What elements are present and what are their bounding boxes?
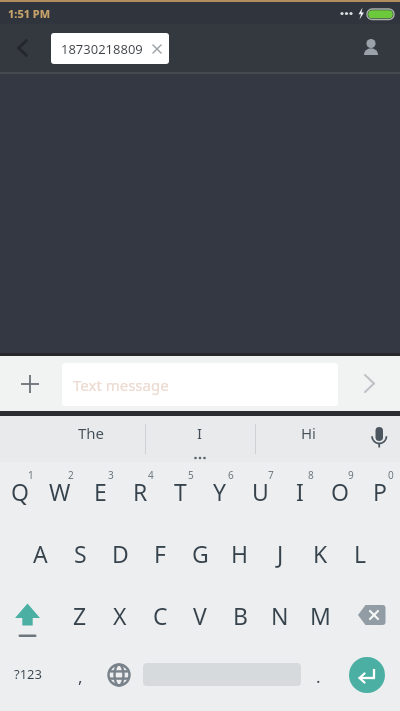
button[interactable]: P xyxy=(360,471,400,511)
staticText: 18730218809 xyxy=(61,40,143,58)
staticText: , xyxy=(78,665,83,688)
button[interactable]: I xyxy=(160,421,240,445)
staticText: E xyxy=(94,476,107,507)
staticText: P xyxy=(373,476,387,507)
staticText: A xyxy=(33,538,48,569)
button[interactable]: K xyxy=(300,533,340,573)
button[interactable] xyxy=(348,590,398,642)
staticText: 4 xyxy=(148,468,154,482)
staticText: 5 xyxy=(188,468,194,482)
button[interactable]: O xyxy=(320,471,360,511)
staticText: Z xyxy=(73,600,87,631)
button[interactable] xyxy=(0,24,44,72)
staticText: 0 xyxy=(388,468,394,482)
staticText: Q xyxy=(11,476,29,507)
button[interactable]: A xyxy=(20,533,60,573)
staticText: U xyxy=(252,476,269,507)
staticText: ?123 xyxy=(14,665,42,683)
staticText: T xyxy=(174,476,187,507)
staticText: C xyxy=(153,600,168,631)
staticText: J xyxy=(277,538,284,569)
staticText: H xyxy=(231,538,249,569)
staticText: 9 xyxy=(348,468,354,482)
button[interactable]: C xyxy=(140,595,180,635)
staticText: M xyxy=(310,600,331,631)
staticText: 7 xyxy=(268,468,274,482)
staticText: W xyxy=(49,476,71,507)
button[interactable]: Hi xyxy=(268,421,348,445)
button[interactable]: N xyxy=(260,595,300,635)
button[interactable]: ?123 xyxy=(6,654,50,694)
button[interactable] xyxy=(354,24,400,72)
staticText: . xyxy=(316,665,321,688)
staticText: 8 xyxy=(308,468,314,482)
button[interactable]: Y xyxy=(200,471,240,511)
staticText: X xyxy=(113,600,127,631)
staticText: L xyxy=(354,538,367,569)
staticText: 1:51 PM xyxy=(8,6,51,21)
button[interactable]: G xyxy=(180,533,220,573)
button[interactable] xyxy=(349,657,385,693)
button[interactable]: Q xyxy=(0,471,40,511)
button[interactable]: I xyxy=(280,471,320,511)
staticText: I xyxy=(296,476,304,507)
button[interactable]: 18730218809 xyxy=(51,33,169,64)
staticText: S xyxy=(74,538,87,569)
button[interactable]: H xyxy=(220,533,260,573)
button[interactable] xyxy=(344,356,400,411)
button[interactable] xyxy=(3,590,53,642)
button[interactable]: V xyxy=(180,595,220,635)
staticText: 1 xyxy=(28,468,34,482)
button[interactable]: D xyxy=(100,533,140,573)
staticText: 2 xyxy=(68,468,74,482)
staticText: F xyxy=(154,538,166,569)
button[interactable]: Text message xyxy=(62,363,338,406)
staticText: 6 xyxy=(228,468,234,482)
button[interactable] xyxy=(99,655,139,695)
button[interactable]: M xyxy=(300,595,340,635)
button[interactable]: B xyxy=(220,595,260,635)
button[interactable]: . xyxy=(298,656,338,696)
button[interactable]: J xyxy=(260,533,300,573)
button[interactable]: U xyxy=(240,471,280,511)
button[interactable]: , xyxy=(60,656,100,696)
button[interactable]: L xyxy=(340,533,380,573)
staticText: D xyxy=(112,538,129,569)
staticText: Y xyxy=(213,476,227,507)
staticText: Text message xyxy=(73,375,169,395)
staticText: B xyxy=(233,600,248,631)
button[interactable]: The xyxy=(51,421,131,445)
staticText: I xyxy=(197,423,203,443)
button[interactable]: T xyxy=(160,471,200,511)
staticText: V xyxy=(193,600,207,631)
button[interactable]: E xyxy=(80,471,120,511)
staticText: 3 xyxy=(108,468,114,482)
button[interactable]: Z xyxy=(60,595,100,635)
button[interactable]: X xyxy=(100,595,140,635)
staticText: Hi xyxy=(301,423,316,443)
staticText: R xyxy=(133,476,148,507)
staticText: G xyxy=(192,538,209,569)
button[interactable]: F xyxy=(140,533,180,573)
button[interactable]: S xyxy=(60,533,100,573)
staticText: O xyxy=(331,476,349,507)
button[interactable]: W xyxy=(40,471,80,511)
button[interactable] xyxy=(0,356,56,411)
button[interactable]: R xyxy=(120,471,160,511)
staticText: The xyxy=(78,423,105,443)
staticText: N xyxy=(271,600,289,631)
staticText: K xyxy=(313,538,328,569)
